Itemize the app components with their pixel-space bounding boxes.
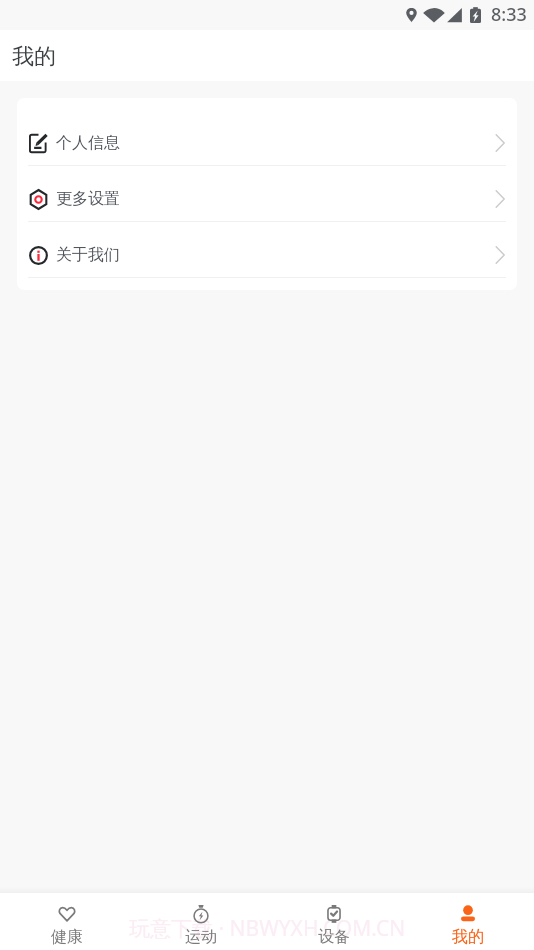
staticText: 关于我们	[56, 245, 120, 265]
staticText: 8:33	[491, 2, 527, 27]
staticText: 我的	[12, 43, 56, 71]
staticText: 运动	[185, 927, 217, 947]
staticText: 个人信息	[56, 133, 120, 153]
staticText: 健康	[51, 927, 83, 947]
button[interactable]: 个人信息	[17, 98, 517, 165]
staticText: 更多设置	[56, 189, 120, 209]
button[interactable]: 设备	[267, 893, 400, 950]
staticText: 我的	[452, 927, 484, 947]
button[interactable]: 我的	[401, 893, 534, 950]
button[interactable]: 健康	[0, 893, 133, 950]
button[interactable]: 运动	[134, 893, 267, 950]
button[interactable]: 关于我们	[17, 221, 517, 290]
staticText: 设备	[318, 927, 350, 947]
button[interactable]: 更多设置	[17, 165, 517, 221]
staticText: 玩意下载 · NBWYXH.COM.CN	[129, 914, 406, 943]
